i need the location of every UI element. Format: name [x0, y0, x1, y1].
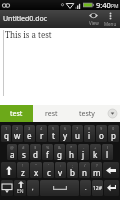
- staticText: n: [82, 167, 87, 178]
- button[interactable]: View: [85, 10, 102, 28]
- button[interactable]: /: [79, 162, 90, 178]
- staticText: ,: [32, 184, 34, 192]
- button[interactable]: $: [30, 144, 41, 160]
- staticText: ;: [72, 163, 74, 168]
- staticText: m: [93, 167, 101, 178]
- staticText: p: [111, 130, 116, 141]
- staticText: b: [70, 167, 75, 178]
- button[interactable]: 8: [84, 125, 95, 142]
- staticText: 9:40: [96, 0, 111, 10]
- staticText: e: [27, 130, 32, 141]
- button[interactable]: !: [17, 162, 29, 178]
- staticText: 8: [88, 126, 91, 131]
- staticText: (: [107, 145, 109, 150]
- button[interactable]: rest: [33, 105, 70, 122]
- staticText: f: [46, 149, 49, 160]
- button[interactable]: Space: [40, 180, 79, 196]
- staticText: 4: [40, 126, 43, 131]
- staticText: l: [106, 149, 109, 160]
- staticText: x: [34, 167, 39, 178]
- staticText: Menu: [104, 21, 117, 27]
- button[interactable]: &: [54, 144, 65, 160]
- button[interactable]: ;: [67, 162, 78, 178]
- staticText: rest: [45, 109, 58, 119]
- staticText: h: [69, 149, 74, 160]
- staticText: +: [94, 145, 97, 150]
- button[interactable]: 0: [108, 125, 119, 142]
- staticText: Untitled0.doc: [3, 14, 85, 24]
- button[interactable]: 6: [60, 125, 71, 142]
- button[interactable]: #: [18, 144, 29, 160]
- staticText: :: [60, 163, 62, 168]
- button[interactable]: More suggestions: [104, 105, 120, 122]
- staticText: .: [85, 184, 87, 192]
- button[interactable]: :: [55, 162, 66, 178]
- staticText: 12#: [93, 185, 102, 192]
- button[interactable]: 1: [1, 125, 11, 142]
- staticText: -: [83, 145, 85, 150]
- button[interactable]: 12#: [92, 180, 103, 196]
- staticText: o: [99, 130, 104, 141]
- button[interactable]: @: [7, 144, 17, 160]
- staticText: 9: [100, 126, 103, 131]
- staticText: a: [10, 149, 15, 160]
- staticText: EN: [17, 188, 24, 195]
- staticText: 0: [112, 126, 115, 131]
- staticText: i: [88, 130, 91, 141]
- staticText: 2: [16, 126, 19, 131]
- staticText: r: [40, 130, 44, 141]
- staticText: &: [58, 145, 61, 150]
- staticText: #: [22, 145, 25, 150]
- staticText: d: [33, 149, 38, 160]
- staticText: PM: [111, 3, 119, 10]
- button[interactable]: 2: [12, 125, 23, 142]
- button[interactable]: -: [78, 144, 89, 160]
- button[interactable]: 3: [24, 125, 35, 142]
- staticText: u: [75, 130, 80, 141]
- staticText: $: [34, 145, 37, 150]
- button[interactable]: ?: [91, 162, 102, 178]
- staticText: s: [22, 149, 26, 160]
- staticText: j: [82, 149, 85, 160]
- staticText: @: [10, 145, 14, 150]
- staticText: *: [70, 145, 73, 150]
- staticText: w: [14, 130, 21, 141]
- button[interactable]: *: [66, 144, 77, 160]
- button[interactable]: testy: [70, 105, 104, 122]
- staticText: y: [63, 130, 68, 141]
- staticText: ?: [96, 163, 98, 168]
- button[interactable]: 7: [72, 125, 83, 142]
- button[interactable]: 5: [48, 125, 59, 142]
- button[interactable]: +: [90, 144, 101, 160]
- button[interactable]: 4: [36, 125, 47, 142]
- button[interactable]: ": [30, 162, 42, 178]
- staticText: testy: [79, 109, 95, 119]
- staticText: ": [35, 163, 37, 168]
- staticText: 7: [76, 126, 79, 131]
- staticText: k: [93, 149, 98, 160]
- button[interactable]: Shift: [1, 162, 16, 178]
- staticText: !: [22, 163, 24, 168]
- button[interactable]: Enter: [104, 180, 119, 196]
- staticText: 1: [5, 126, 8, 131]
- button[interactable]: Hide keyboard: [1, 180, 13, 196]
- button[interactable]: Voice input: [14, 180, 26, 196]
- staticText: This is a test: [5, 29, 52, 40]
- button[interactable]: 9: [96, 125, 107, 142]
- button[interactable]: (: [102, 144, 113, 160]
- button[interactable]: ': [43, 162, 54, 178]
- staticText: 6: [64, 126, 67, 131]
- staticText: g: [57, 149, 62, 160]
- staticText: %: [46, 145, 50, 150]
- staticText: 3: [28, 126, 31, 131]
- button[interactable]: Backspace: [103, 162, 119, 178]
- button[interactable]: test: [0, 105, 33, 122]
- staticText: 5: [52, 126, 55, 131]
- staticText: t: [52, 130, 55, 141]
- button[interactable]: ,: [27, 180, 39, 196]
- staticText: q: [4, 130, 9, 141]
- button[interactable]: Menu: [102, 10, 119, 28]
- button[interactable]: %: [42, 144, 53, 160]
- staticText: View: [89, 20, 99, 26]
- button[interactable]: .: [80, 180, 91, 196]
